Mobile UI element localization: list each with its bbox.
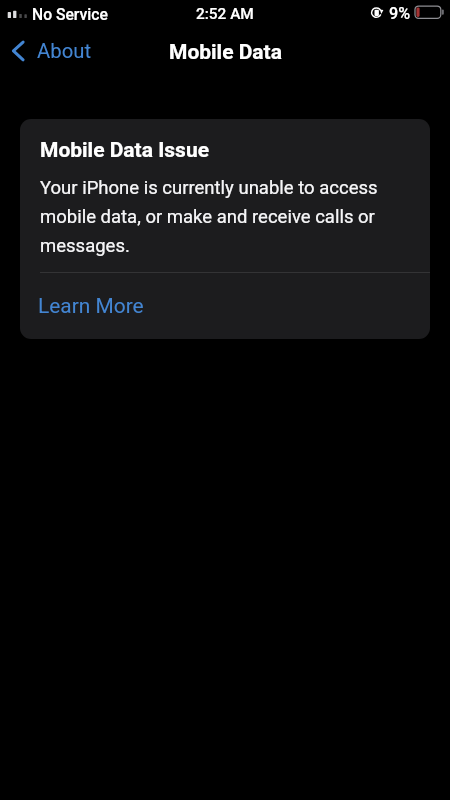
staticText: No Service xyxy=(32,5,108,23)
staticText: Your iPhone is currently unable to acces… xyxy=(40,177,390,257)
staticText: Mobile Data xyxy=(169,40,282,65)
staticText: Learn More xyxy=(38,294,144,318)
button[interactable]: Back to About xyxy=(6,33,98,71)
staticText: 9% xyxy=(389,4,411,23)
button[interactable]: Learn More xyxy=(20,278,430,338)
staticText: About xyxy=(37,39,92,63)
staticText: Mobile Data Issue xyxy=(40,138,209,163)
staticText: 2:52 AM xyxy=(196,5,254,23)
